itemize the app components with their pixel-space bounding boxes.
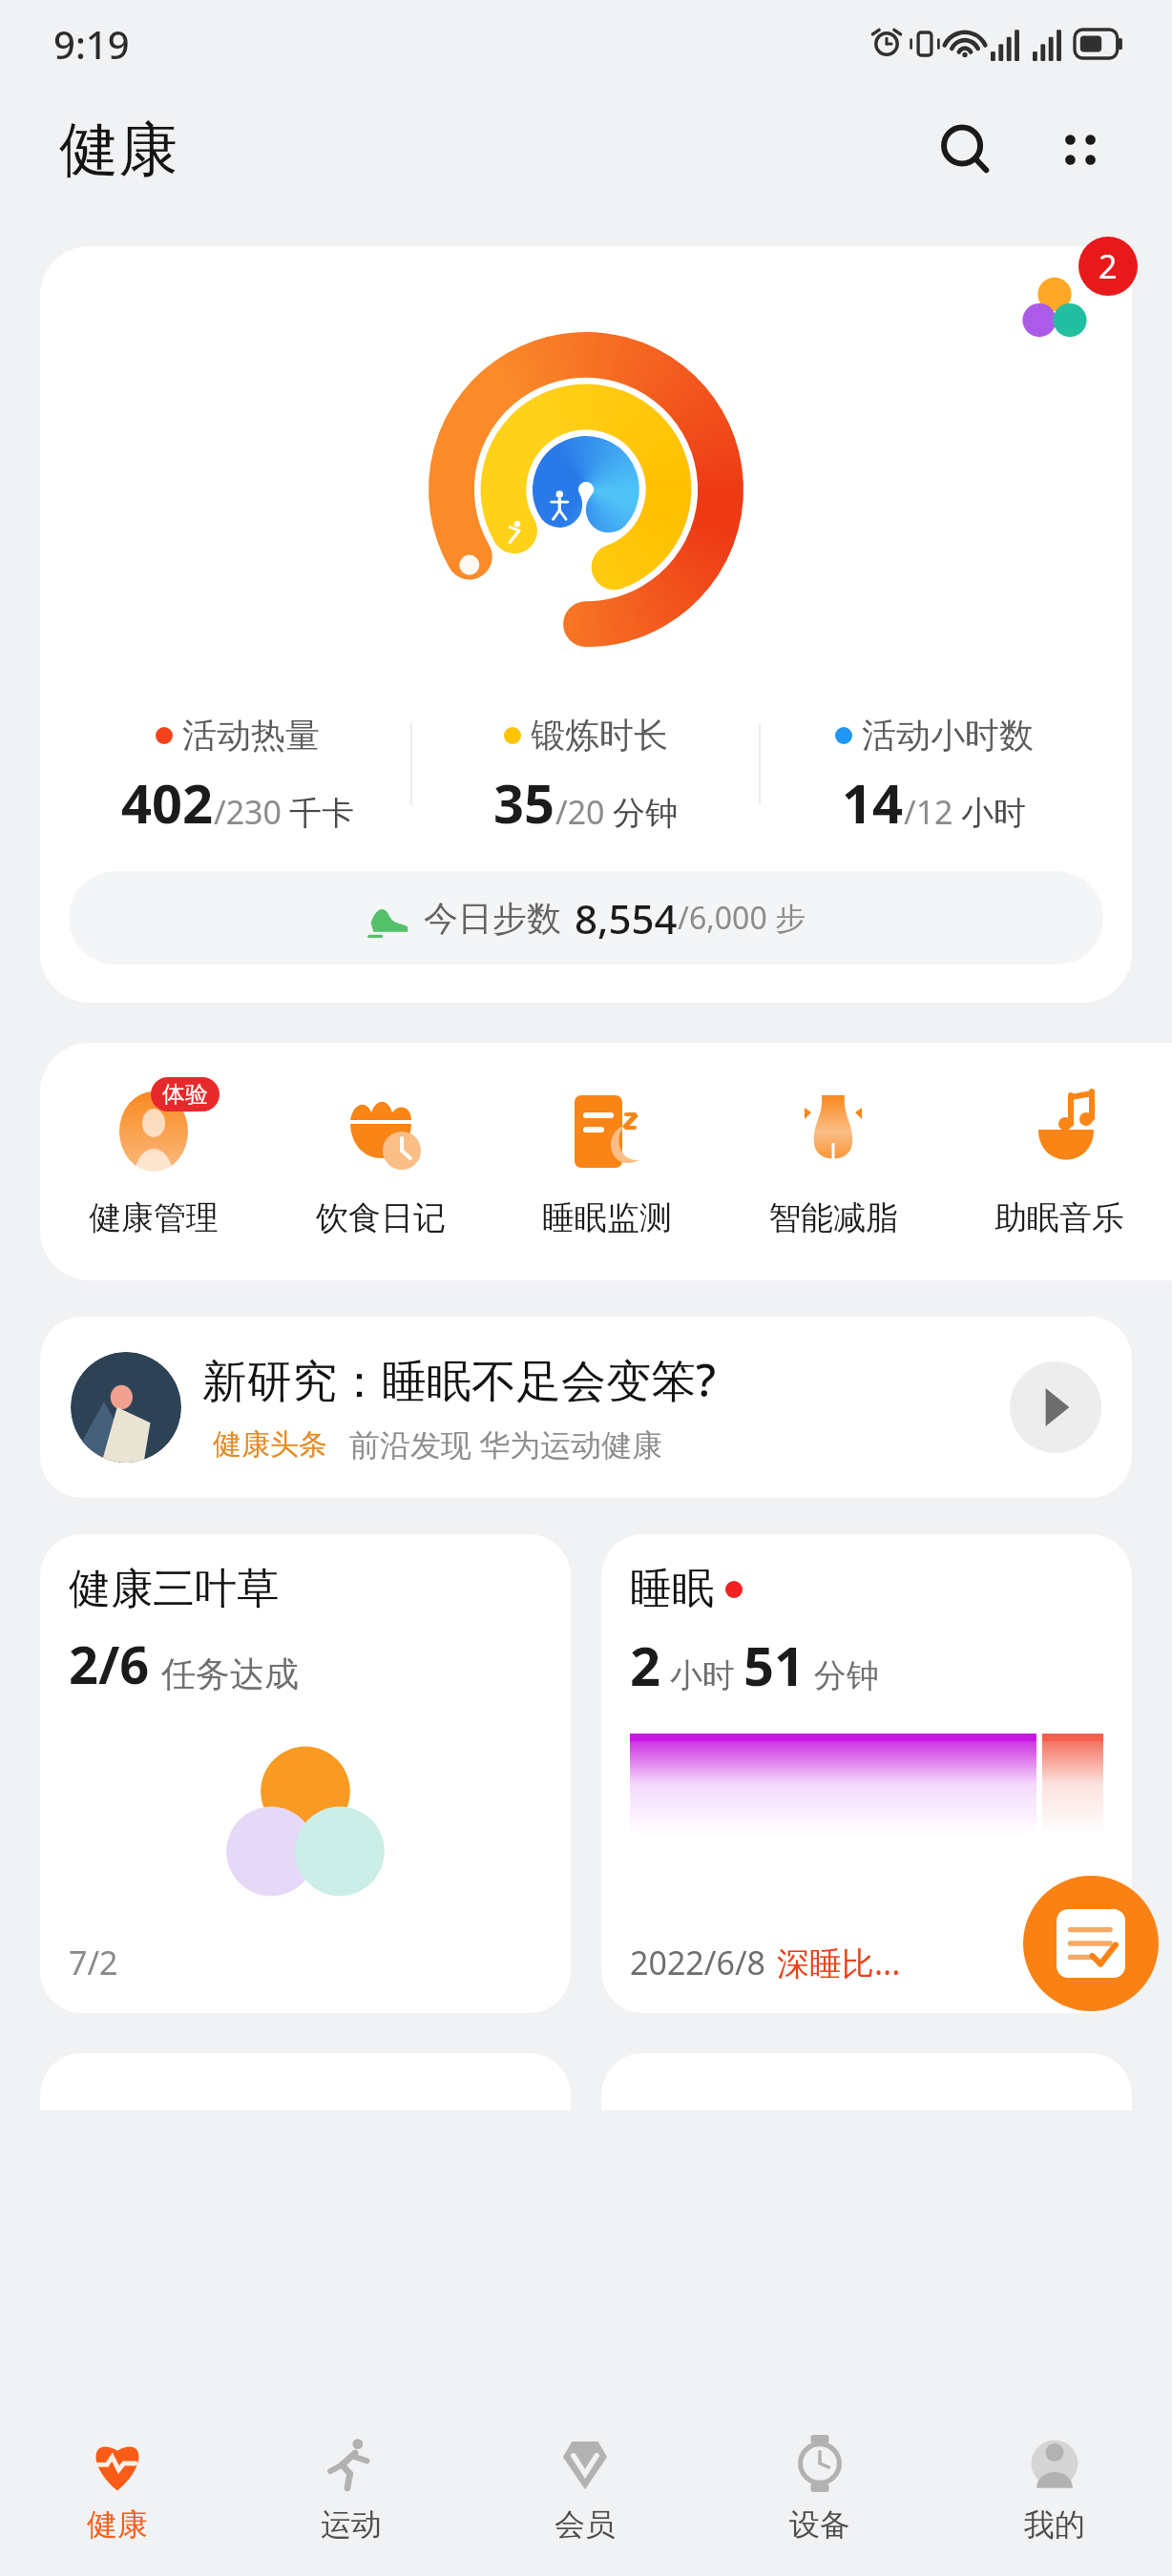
button[interactable]: Search: [916, 100, 1015, 199]
staticText: 9:19: [53, 18, 130, 70]
staticText: 51: [743, 1629, 806, 1701]
staticText: 睡眠监测: [542, 1197, 672, 1238]
button[interactable]: 助眠音乐: [946, 1081, 1172, 1238]
staticText: 助眠音乐: [994, 1197, 1124, 1238]
button[interactable]: 饮食日记: [267, 1081, 493, 1238]
button[interactable]: 智能减脂: [720, 1081, 946, 1238]
staticText: 今日步数: [424, 897, 561, 940]
button[interactable]: 健康: [0, 2399, 234, 2576]
staticText: 会员: [555, 2505, 616, 2544]
staticText: 分钟: [806, 1652, 879, 1696]
staticText: 14: [842, 766, 904, 839]
staticText: 2: [1099, 244, 1118, 288]
button[interactable]: 健康三叶草: [40, 1534, 571, 2013]
staticText: 健康三叶草: [69, 1563, 279, 1615]
staticText: 体验: [162, 1080, 208, 1109]
button[interactable]: [989, 246, 1132, 349]
staticText: 饮食日记: [316, 1197, 446, 1238]
button[interactable]: Play: [1010, 1361, 1101, 1453]
staticText: 8,554: [575, 891, 678, 945]
staticText: 健康: [87, 2505, 148, 2544]
staticText: 35: [493, 766, 555, 839]
staticText: 任务达成: [161, 1652, 299, 1695]
button[interactable]: More options: [1031, 100, 1130, 199]
staticText: 7/2: [69, 1941, 118, 1984]
staticText: /6,000 步: [678, 897, 806, 939]
staticText: 2: [630, 1629, 661, 1701]
staticText: 2/6: [69, 1629, 150, 1699]
staticText: /20: [555, 790, 605, 834]
staticText: /12: [904, 790, 953, 834]
staticText: 健康管理: [89, 1197, 219, 1238]
staticText: 睡眠: [630, 1563, 714, 1615]
staticText: 新研究：睡眠不足会变笨?: [202, 1349, 717, 1410]
staticText: 智能减脂: [768, 1197, 898, 1238]
staticText: 健康: [59, 113, 178, 187]
button[interactable]: 我的: [937, 2399, 1172, 2576]
staticText: 2022/6/8: [630, 1941, 765, 1984]
staticText: 活动小时数: [862, 714, 1034, 757]
staticText: 活动热量: [182, 714, 320, 757]
staticText: 千卡: [289, 793, 354, 834]
button[interactable]: 运动: [234, 2399, 468, 2576]
button[interactable]: Record: [1023, 1876, 1159, 2011]
button[interactable]: 设备: [702, 2399, 937, 2576]
staticText: 小时: [961, 793, 1026, 834]
staticText: 我的: [1024, 2505, 1085, 2544]
staticText: 分钟: [613, 793, 678, 834]
staticText: 深睡比...: [777, 1941, 901, 1984]
button[interactable]: 体验: [40, 1081, 267, 1238]
button[interactable]: 睡眠: [601, 1534, 1132, 2013]
button[interactable]: 睡眠监测: [493, 1081, 720, 1238]
staticText: 前沿发现 华为运动健康: [349, 1423, 663, 1465]
staticText: 402: [121, 766, 214, 839]
button[interactable]: 活动热量: [40, 246, 1132, 1003]
button[interactable]: 新研究：睡眠不足会变笨?: [40, 1317, 1132, 1498]
staticText: 小时: [661, 1652, 743, 1696]
button[interactable]: 会员: [468, 2399, 702, 2576]
button[interactable]: 今日步数: [69, 871, 1103, 965]
staticText: /230: [214, 790, 282, 834]
staticText: 健康头条: [213, 1426, 327, 1463]
staticText: 锻炼时长: [531, 714, 668, 757]
staticText: 设备: [789, 2505, 850, 2544]
staticText: 运动: [321, 2505, 382, 2544]
